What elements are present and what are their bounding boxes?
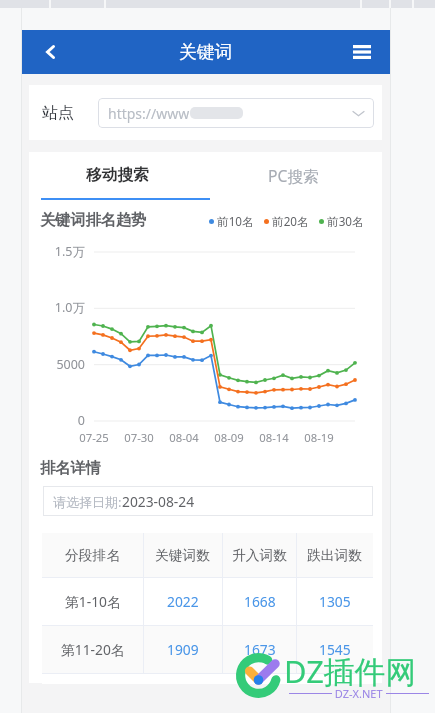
staticText: 07-25: [74, 430, 114, 445]
staticText: 站点: [42, 103, 74, 123]
button[interactable]: PC搜索: [205, 152, 382, 200]
staticText: 1.0万: [29, 299, 85, 316]
staticText: 前30名: [327, 213, 364, 229]
staticText: 2023-08-24: [122, 492, 195, 511]
button[interactable]: 移动搜索: [29, 152, 205, 200]
staticText: 1668: [244, 592, 276, 611]
staticText: 排名详情: [40, 458, 101, 477]
button[interactable]: 1305: [297, 578, 373, 625]
staticText: 1909: [167, 640, 199, 659]
staticText: DZ插件网: [284, 650, 417, 692]
staticText: 2022: [167, 592, 199, 611]
button[interactable]: 第11-20名: [42, 626, 143, 673]
staticText: 5000: [29, 356, 85, 373]
staticText: 关键词: [179, 41, 233, 63]
button[interactable]: 关键词数: [144, 533, 222, 577]
staticText: 第11-20名: [61, 640, 125, 659]
staticText: 1305: [319, 592, 351, 611]
staticText: 跌出词数: [307, 547, 363, 564]
button[interactable]: 1545: [297, 626, 373, 673]
button[interactable]: https://www: [98, 98, 374, 128]
staticText: 前20名: [272, 213, 309, 229]
staticText: 前10名: [217, 213, 254, 229]
staticText: 07-30: [119, 430, 159, 445]
staticText: 0: [29, 412, 85, 429]
staticText: 08-14: [254, 430, 294, 445]
staticText: 08-04: [164, 430, 204, 445]
button[interactable]: Menu: [345, 35, 379, 69]
staticText: 关键词排名趋势: [40, 210, 147, 229]
staticText: PC搜索: [268, 165, 319, 186]
staticText: 1.5万: [29, 243, 85, 260]
staticText: 1673: [244, 640, 276, 659]
staticText: DZ-X.NET: [332, 686, 386, 701]
button[interactable]: 1668: [223, 578, 296, 625]
staticText: https://www: [108, 104, 190, 123]
button[interactable]: Back: [33, 35, 67, 69]
button[interactable]: 2022: [144, 578, 222, 625]
staticText: 升入词数: [232, 547, 288, 564]
staticText: 请选择日期:: [53, 493, 122, 511]
staticText: 第1-10名: [65, 592, 121, 611]
button[interactable]: 请选择日期:: [43, 486, 373, 516]
button[interactable]: 1909: [144, 626, 222, 673]
staticText: 关键词数: [155, 547, 211, 564]
button[interactable]: 分段排名: [42, 533, 143, 577]
staticText: 1545: [319, 640, 351, 659]
button[interactable]: 升入词数: [223, 533, 296, 577]
staticText: 08-19: [299, 430, 339, 445]
button[interactable]: 第1-10名: [42, 578, 143, 625]
button[interactable]: 跌出词数: [297, 533, 373, 577]
button[interactable]: 1673: [223, 626, 296, 673]
staticText: 08-09: [209, 430, 249, 445]
staticText: 分段排名: [65, 547, 121, 564]
staticText: 移动搜索: [86, 165, 149, 185]
